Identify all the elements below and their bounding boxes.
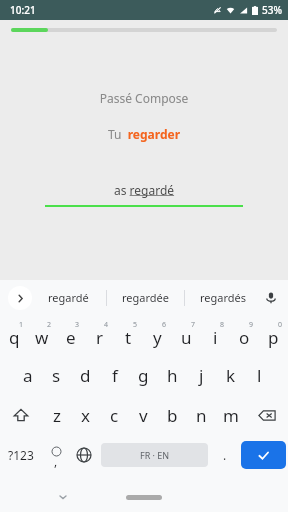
button[interactable]: Hide keyboard [52,486,74,508]
staticText: y [153,326,162,349]
button[interactable]: Home [126,495,162,500]
staticText: , [54,453,58,469]
button[interactable]: ?123 [0,435,42,475]
button[interactable]: h [158,355,187,395]
staticText: c [110,404,119,427]
staticText: n [196,404,207,427]
button[interactable]: 5 [114,315,143,355]
button[interactable]: regardés [185,280,262,315]
staticText: regardé [48,290,89,305]
staticText: r [96,326,104,349]
button[interactable]: f [100,355,129,395]
staticText: f [112,364,118,387]
staticText: a [23,364,33,387]
button[interactable]: c [100,395,129,435]
staticText: 7 [191,320,196,330]
button[interactable]: FR · EN [101,443,208,467]
staticText: 1 [19,320,24,330]
button[interactable]: Change language [70,435,98,475]
button[interactable]: as regardé [45,182,243,207]
staticText: 0 [278,320,283,330]
button[interactable]: z [42,395,71,435]
button[interactable]: regardée [107,280,184,315]
staticText: l [257,364,262,387]
staticText: 9 [249,320,254,330]
button[interactable]: n [187,395,216,435]
button[interactable]: 7 [172,315,201,355]
staticText: regardés [200,290,247,305]
staticText: 53% [262,3,282,17]
staticText: u [181,326,192,349]
staticText: q [9,326,20,349]
staticText: Tu regarder [0,126,288,142]
button[interactable]: 1 [0,315,28,355]
button[interactable]: k [216,355,245,395]
staticText: 4 [104,320,109,330]
button[interactable]: d [71,355,100,395]
staticText: k [226,364,236,387]
staticText: s [52,364,61,387]
staticText: regardée [122,290,169,305]
button[interactable]: v [129,395,158,435]
staticText: FR · EN [140,449,170,461]
staticText: 10:21 [10,3,36,17]
button[interactable]: 3 [56,315,85,355]
button[interactable]: m [216,395,245,435]
button[interactable]: 8 [201,315,230,355]
staticText: h [167,364,178,387]
staticText: 6 [162,320,167,330]
staticText: j [199,364,204,387]
button[interactable]: . [211,435,239,475]
button[interactable]: Backspace [245,395,288,435]
staticText: i [213,326,218,349]
staticText: w [35,326,49,349]
staticText: ?123 [8,447,34,463]
staticText: t [125,326,132,349]
staticText: . [223,447,227,463]
staticText: z [53,404,61,427]
staticText: o [239,326,250,349]
button[interactable]: b [158,395,187,435]
staticText: d [80,364,91,387]
button[interactable]: a [13,355,42,395]
button[interactable]: Enter [241,441,286,469]
staticText: as regardé [114,182,175,198]
button[interactable]: 0 [259,315,288,355]
button[interactable]: l [245,355,274,395]
button[interactable]: 2 [28,315,56,355]
button[interactable]: Voice input [260,287,282,309]
staticText: 2 [47,320,52,330]
button[interactable]: 9 [230,315,259,355]
button[interactable]: Shift [0,395,42,435]
staticText: m [223,404,239,427]
staticText: p [268,326,279,349]
button[interactable]: Emoji and comma [42,435,70,475]
button[interactable]: j [187,355,216,395]
staticText: 5 [133,320,138,330]
staticText: 3 [75,320,80,330]
button[interactable]: 6 [143,315,172,355]
staticText: b [167,404,178,427]
staticText: e [66,326,76,349]
button[interactable]: s [42,355,71,395]
staticText: 8 [220,320,225,330]
button[interactable]: Expand suggestions [8,286,32,310]
staticText: x [81,404,90,427]
button[interactable]: regardé [30,280,106,315]
staticText: Passé Compose [0,90,288,106]
staticText: g [138,364,149,387]
staticText: v [139,404,148,427]
button[interactable]: x [71,395,100,435]
button[interactable]: g [129,355,158,395]
button[interactable]: 4 [85,315,114,355]
